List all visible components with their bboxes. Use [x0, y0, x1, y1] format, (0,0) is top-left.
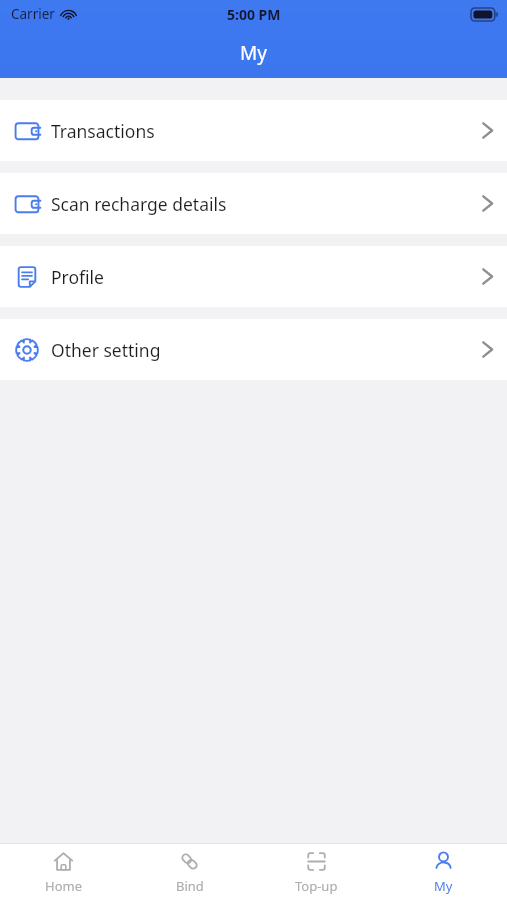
staticText: Scan recharge details [51, 192, 482, 216]
button[interactable]: My [380, 844, 507, 900]
staticText: Profile [51, 265, 482, 289]
staticText: Transactions [51, 119, 482, 143]
button[interactable]: Bind [126, 844, 253, 900]
button[interactable]: Other setting [0, 319, 507, 380]
button[interactable]: Home [0, 844, 126, 900]
staticText: Bind [176, 877, 204, 895]
staticText: My [434, 877, 453, 895]
staticText: Other setting [51, 338, 482, 362]
button[interactable]: Top-up [253, 844, 380, 900]
button[interactable]: Profile [0, 246, 507, 307]
staticText: Top-up [295, 877, 338, 895]
staticText: Carrier [11, 5, 55, 23]
button[interactable]: Scan recharge details [0, 173, 507, 234]
staticText: Home [45, 877, 82, 895]
staticText: My [240, 40, 267, 66]
button[interactable]: Transactions [0, 100, 507, 161]
staticText: 5:00 PM [227, 5, 281, 24]
